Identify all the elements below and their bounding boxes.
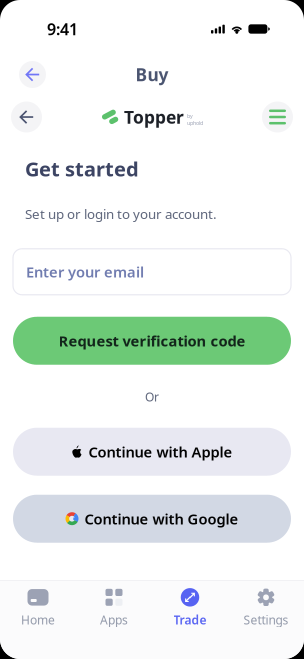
button[interactable]: Continue with Apple [13, 428, 291, 476]
staticText: Set up or login to your account. [25, 205, 217, 223]
staticText: by [187, 112, 193, 119]
button[interactable]: Home [0, 581, 76, 631]
staticText: Get started [25, 155, 139, 182]
staticText: Continue with Google [84, 509, 238, 528]
button[interactable]: Back [11, 101, 42, 132]
staticText: Topper [124, 105, 184, 128]
staticText: Settings [243, 612, 288, 628]
button[interactable]: Back [19, 61, 46, 88]
button[interactable]: Continue with Google [13, 495, 291, 543]
staticText: Continue with Apple [88, 442, 232, 461]
staticText: 9:41 [47, 18, 78, 40]
staticText: uphold [187, 119, 203, 127]
staticText: Enter your email [26, 262, 144, 281]
staticText: Buy [135, 63, 168, 86]
staticText: Home [21, 612, 55, 628]
staticText: Apps [100, 612, 128, 628]
button[interactable]: Menu [262, 101, 293, 132]
button[interactable]: Apps [76, 581, 152, 631]
button[interactable]: Request verification code [13, 317, 291, 365]
staticText: Trade [173, 612, 206, 628]
button[interactable]: Trade [152, 581, 228, 631]
staticText: Request verification code [58, 331, 245, 350]
staticText: Or [145, 389, 159, 405]
button[interactable]: Settings [228, 581, 304, 631]
